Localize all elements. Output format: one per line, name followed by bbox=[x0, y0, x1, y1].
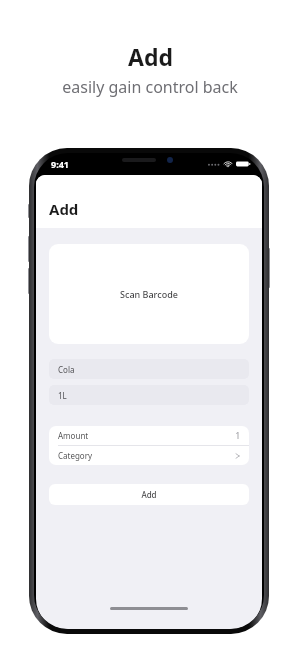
staticText: Scan Barcode bbox=[120, 288, 178, 300]
button[interactable]: Scan Barcode bbox=[49, 244, 249, 344]
staticText: Add bbox=[49, 199, 79, 219]
button[interactable]: Category bbox=[49, 446, 249, 465]
staticText: 1L bbox=[58, 390, 67, 401]
button[interactable]: Add bbox=[49, 484, 249, 505]
button[interactable]: Cola bbox=[49, 359, 249, 379]
staticText: easily gain control back bbox=[62, 76, 238, 98]
button[interactable]: 1L bbox=[49, 385, 249, 405]
staticText: Add bbox=[128, 41, 173, 72]
staticText: Add bbox=[141, 489, 157, 500]
staticText: Amount bbox=[58, 430, 89, 441]
staticText: 1 bbox=[235, 430, 240, 441]
staticText: 9:41 bbox=[51, 158, 69, 170]
button[interactable]: Amount bbox=[49, 426, 249, 445]
staticText: Category bbox=[58, 450, 93, 461]
other: Choose category bbox=[235, 452, 240, 460]
staticText: Cola bbox=[58, 364, 75, 375]
